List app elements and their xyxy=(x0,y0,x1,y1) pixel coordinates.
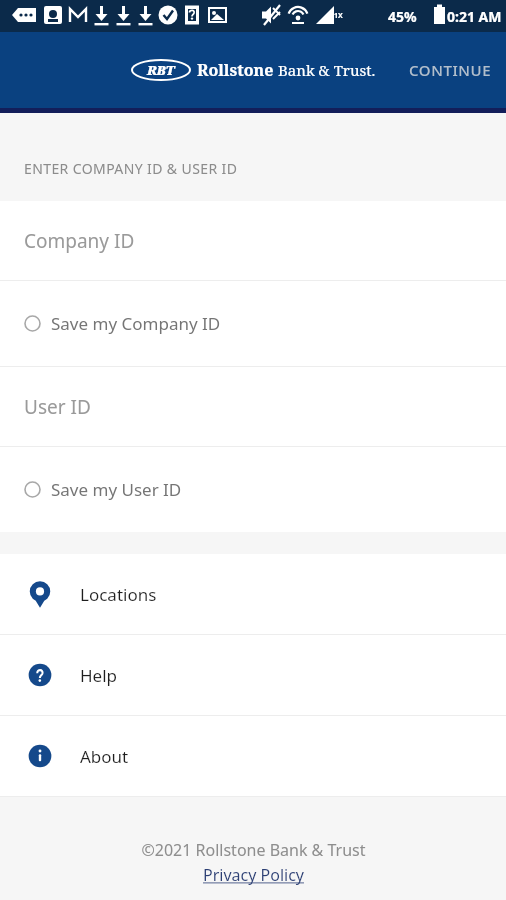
staticText: RBT xyxy=(147,61,175,79)
staticText: Privacy Policy xyxy=(203,864,304,886)
staticText: ©2021 Rollstone Bank & Trust xyxy=(141,839,366,861)
button[interactable]: Privacy Policy xyxy=(203,864,304,886)
button[interactable]: User ID xyxy=(0,367,506,446)
staticText: Bank & Trust. xyxy=(278,60,376,80)
staticText: Help xyxy=(80,664,118,687)
staticText: ENTER COMPANY ID & USER ID xyxy=(24,159,238,178)
button[interactable]: About xyxy=(0,716,506,796)
staticText: User ID xyxy=(24,394,91,420)
button[interactable]: CONTINUE xyxy=(395,48,506,92)
staticText: 45% xyxy=(388,7,417,26)
button[interactable]: Save my Company ID xyxy=(0,281,506,366)
staticText: Company ID xyxy=(24,228,135,254)
staticText: About xyxy=(80,745,129,768)
button[interactable]: Save my User ID xyxy=(0,447,506,532)
staticText: Locations xyxy=(80,583,157,606)
staticText: Save my User ID xyxy=(51,478,182,501)
staticText: CONTINUE xyxy=(409,60,492,80)
staticText: 10:21 AM xyxy=(439,7,502,26)
staticText: 1X xyxy=(334,11,343,21)
staticText: Rollstone xyxy=(197,59,274,81)
button[interactable]: Help xyxy=(0,635,506,715)
staticText: Save my Company ID xyxy=(51,312,221,335)
button[interactable]: Locations xyxy=(0,554,506,634)
button[interactable]: Company ID xyxy=(0,201,506,280)
